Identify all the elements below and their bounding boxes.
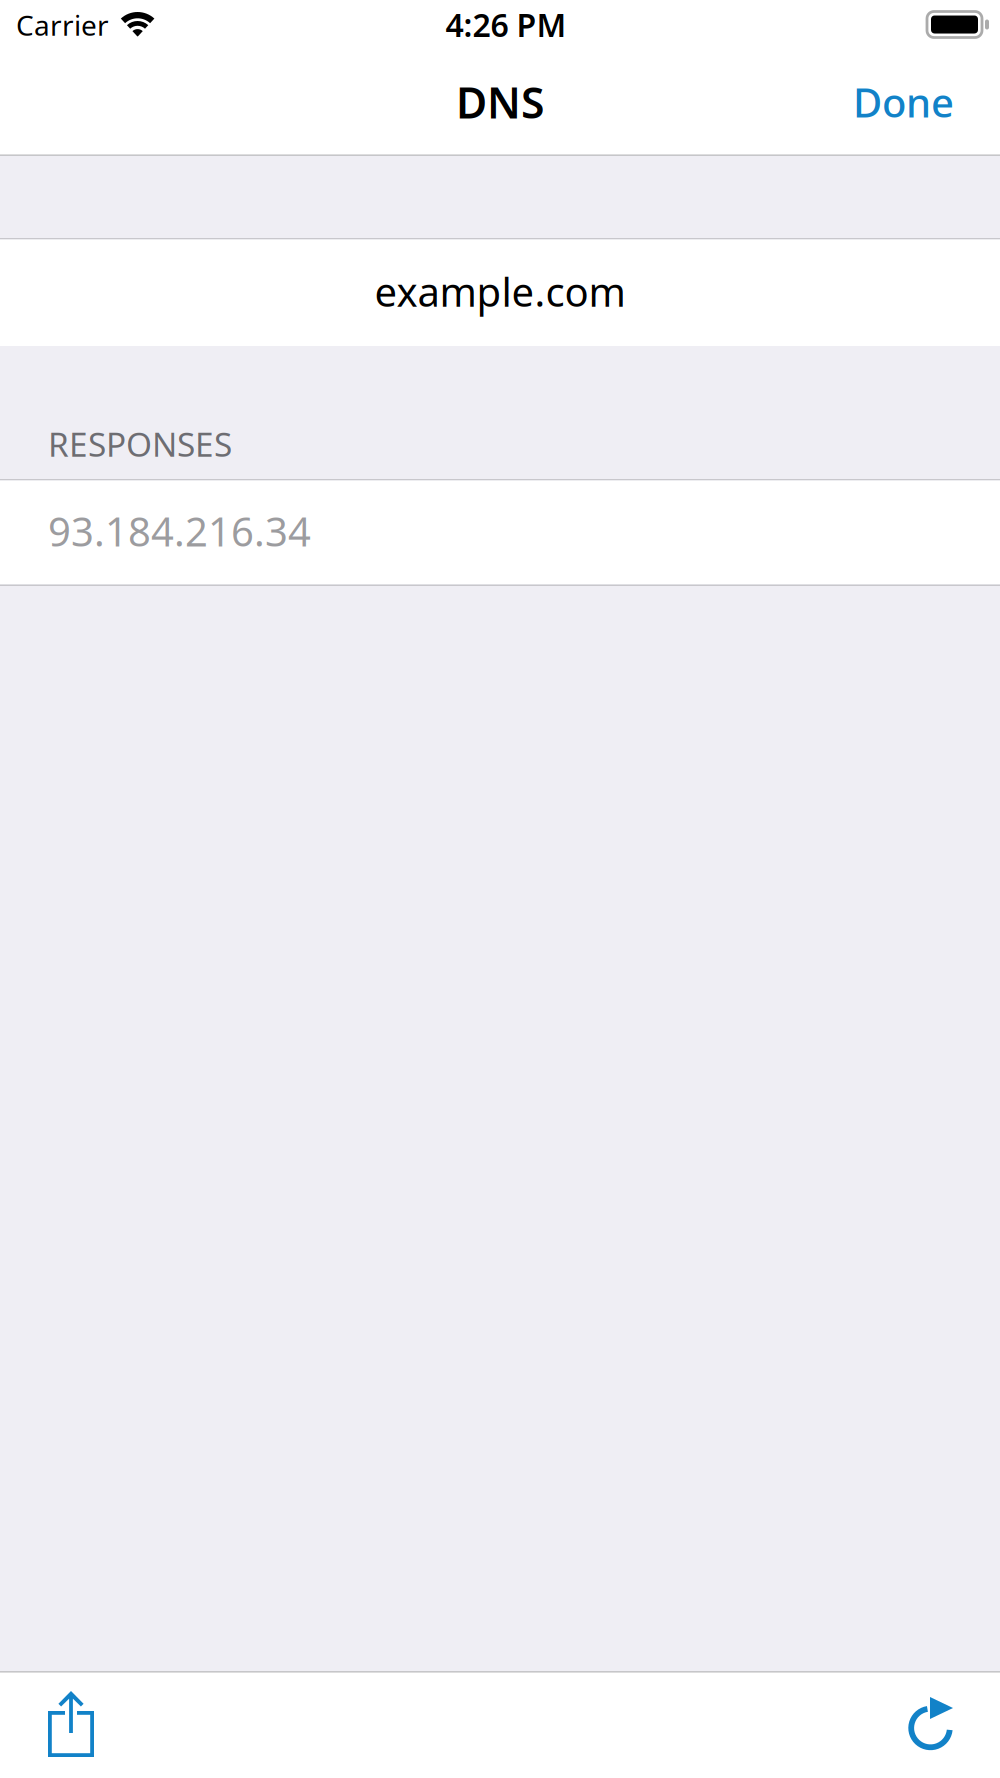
- staticText: 93.184.216.34: [48, 504, 311, 557]
- staticText: DNS: [456, 74, 544, 130]
- button[interactable]: 93.184.216.34: [0, 480, 1000, 584]
- button[interactable]: Share: [0, 1671, 122, 1778]
- staticText: Carrier: [16, 6, 109, 44]
- staticText: Done: [853, 75, 954, 128]
- button[interactable]: example.com: [0, 239, 1000, 346]
- staticText: example.com: [374, 265, 625, 318]
- staticText: 4:26 PM: [445, 3, 566, 46]
- button[interactable]: Done: [827, 64, 1000, 144]
- staticText: RESPONSES: [48, 422, 232, 466]
- button[interactable]: Refresh: [880, 1671, 1000, 1778]
